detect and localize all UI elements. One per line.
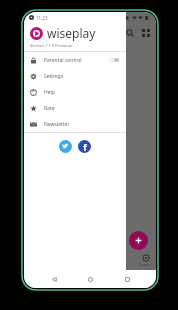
staticText: Settings <box>44 73 64 80</box>
staticText: Parental control <box>44 57 82 64</box>
staticText: wiseplay <box>47 25 96 41</box>
button[interactable]: Facebook <box>78 140 91 153</box>
button[interactable]: Settings <box>24 68 126 84</box>
button[interactable]: Add <box>129 231 148 250</box>
staticText: Help <box>44 89 55 96</box>
button[interactable]: Search <box>122 25 138 41</box>
staticText: Browse <box>139 263 150 267</box>
button[interactable]: Back <box>47 272 61 286</box>
button[interactable]: Grid view <box>138 25 154 41</box>
button[interactable]: Rate <box>24 100 126 116</box>
staticText: Newsletter <box>44 121 70 128</box>
staticText: f <box>83 141 87 153</box>
button[interactable]: Home <box>83 272 97 286</box>
staticText: Version 1.1.0 Premium <box>30 43 73 48</box>
button[interactable]: Recents <box>120 272 134 286</box>
button[interactable]: Twitter <box>59 140 72 153</box>
staticText: Rate <box>44 105 55 112</box>
staticText: 11:23 <box>36 15 48 21</box>
button[interactable]: Help <box>24 84 126 100</box>
button[interactable]: Newsletter <box>24 116 126 132</box>
button[interactable]: Parental control <box>24 52 126 68</box>
